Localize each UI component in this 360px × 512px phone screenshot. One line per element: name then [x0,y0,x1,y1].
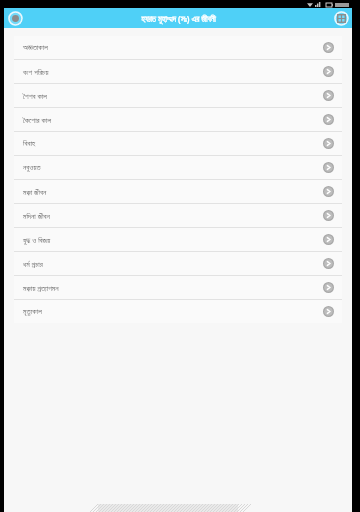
button[interactable]: মৃত্যুকাল [14,300,342,323]
staticText: মক্কা জীবন [23,187,323,197]
staticText: মক্কায় প্রত্যাগমন [23,283,323,293]
button[interactable]: Navigate up [7,10,23,26]
button[interactable]: কৈশোর কাল [14,108,342,131]
button[interactable]: শৈশব কাল [14,84,342,107]
button[interactable]: More options [333,10,349,26]
button[interactable]: মদিনা জীবন [14,204,342,227]
button[interactable]: বিবাহ [14,132,342,155]
staticText: অজ্ঞতাকাল [23,44,323,52]
button[interactable]: নবুওয়ত [14,156,342,179]
button[interactable]: ধর্ম প্রচার [14,252,342,275]
staticText: শৈশব কাল [23,91,323,101]
staticText: মৃত্যুকাল [23,308,323,316]
staticText: নবুওয়ত [23,164,323,172]
staticText: ধর্ম প্রচার [23,259,323,269]
button[interactable]: যুদ্ধ ও বিজয় [14,228,342,251]
staticText: বিবাহ [23,140,323,148]
staticText: যুদ্ধ ও বিজয় [23,235,323,245]
button[interactable]: মক্কায় প্রত্যাগমন [14,276,342,299]
button[interactable]: মক্কা জীবন [14,180,342,203]
staticText: হযরত মুহাম্মদ (সঃ) এর জীবনী [141,13,216,24]
staticText: মদিনা জীবন [23,211,323,221]
staticText: কৈশোর কাল [23,115,323,125]
button[interactable]: অজ্ঞতাকাল [14,36,342,59]
staticText: বংশ পরিচয় [23,67,323,77]
button[interactable]: বংশ পরিচয় [14,60,342,83]
